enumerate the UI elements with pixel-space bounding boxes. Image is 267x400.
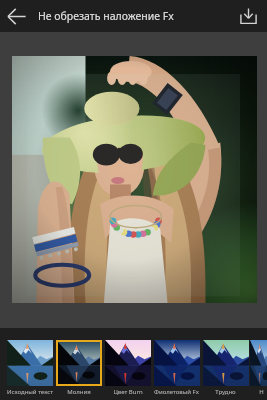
staticText: Молния	[67, 388, 91, 396]
button[interactable]: Фиолетовый Fx	[152, 328, 201, 400]
staticText: Не обрезать наложение Fx	[38, 9, 174, 23]
button[interactable]: Download	[234, 2, 262, 30]
staticText: Цвет Burn	[113, 388, 143, 396]
button[interactable]: Н	[250, 328, 267, 400]
button[interactable]: Back	[0, 0, 32, 32]
button[interactable]: Молния	[54, 328, 103, 400]
button[interactable]: Исходный текст	[5, 328, 54, 400]
button[interactable]: Цвет Burn	[103, 328, 152, 400]
staticText: Трудно запомнить	[201, 388, 250, 396]
staticText: Н	[259, 388, 264, 396]
staticText: Фиолетовый Fx	[154, 388, 199, 396]
staticText: Исходный текст	[7, 388, 53, 396]
button[interactable]: Трудно запомнить	[201, 328, 250, 400]
